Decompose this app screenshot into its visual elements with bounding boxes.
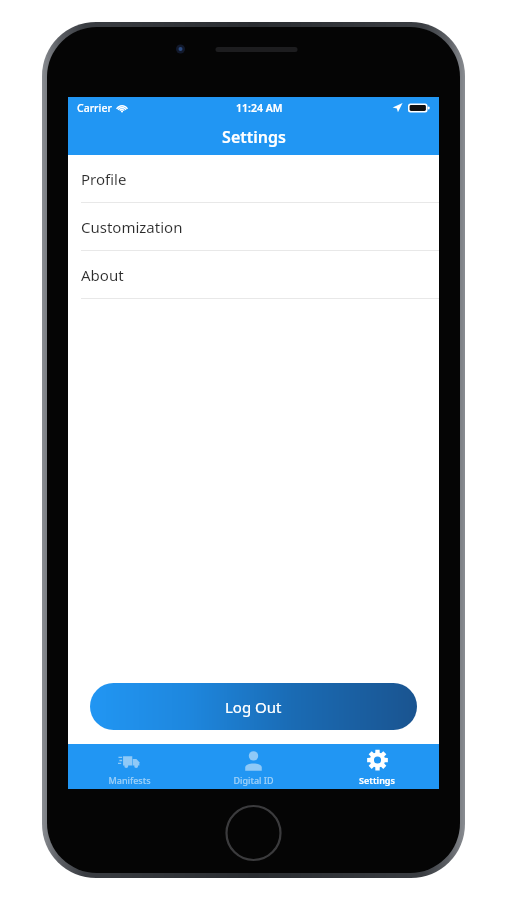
staticText: Digital ID: [233, 774, 274, 786]
staticText: 11:24 AM: [236, 101, 283, 115]
button[interactable]: Log Out: [90, 683, 417, 730]
button[interactable]: Profile: [68, 155, 439, 203]
staticText: Profile: [81, 169, 127, 189]
button[interactable]: Digital ID: [191, 744, 315, 786]
button[interactable]: Customization: [68, 203, 439, 251]
staticText: Customization: [81, 217, 183, 237]
button[interactable]: About: [68, 251, 439, 299]
staticText: Carrier: [77, 101, 112, 115]
staticText: Manifests: [108, 774, 151, 786]
staticText: Log Out: [225, 697, 282, 717]
button[interactable]: Manifests: [68, 744, 191, 786]
staticText: Settings: [359, 774, 395, 786]
staticText: About: [81, 265, 124, 285]
staticText: Settings: [222, 126, 286, 148]
button[interactable]: Settings: [315, 744, 439, 786]
